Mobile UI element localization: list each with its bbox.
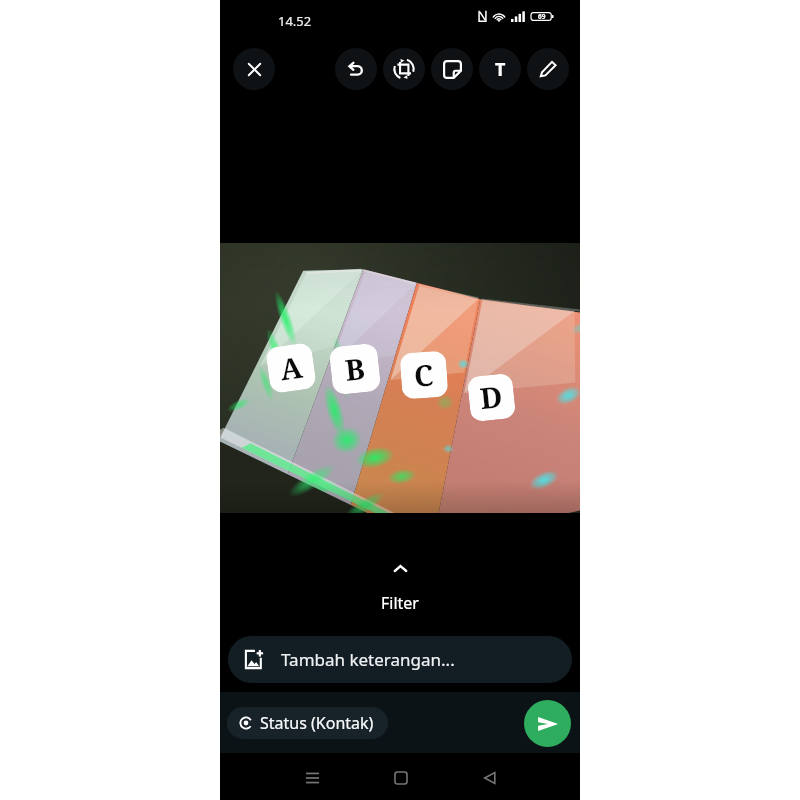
button[interactable]: Crop and rotate — [383, 48, 425, 90]
staticText: 14.52 — [278, 12, 312, 30]
staticText: Status (Kontak) — [260, 712, 374, 734]
button[interactable]: Sticker — [431, 48, 473, 90]
staticText: B — [343, 348, 367, 389]
button[interactable]: Tambah keterangan... — [228, 636, 572, 683]
staticText: 69 — [538, 12, 546, 21]
button[interactable]: Draw — [527, 48, 569, 90]
button[interactable]: Home — [379, 756, 423, 800]
staticText: T — [495, 57, 506, 82]
button[interactable]: Text — [479, 48, 521, 90]
button[interactable]: Close — [233, 48, 275, 90]
staticText: D — [478, 376, 505, 417]
button[interactable]: Recent apps — [290, 756, 334, 800]
button[interactable]: Send — [524, 700, 571, 747]
staticText: Filter — [381, 592, 419, 614]
button[interactable]: Filter — [220, 561, 580, 614]
button[interactable]: Back — [468, 756, 512, 800]
staticText: A — [277, 347, 304, 388]
staticText: C — [413, 354, 435, 395]
button[interactable]: Undo — [335, 48, 377, 90]
button[interactable]: Status (Kontak) — [227, 707, 388, 739]
staticText: Tambah keterangan... — [281, 648, 455, 671]
